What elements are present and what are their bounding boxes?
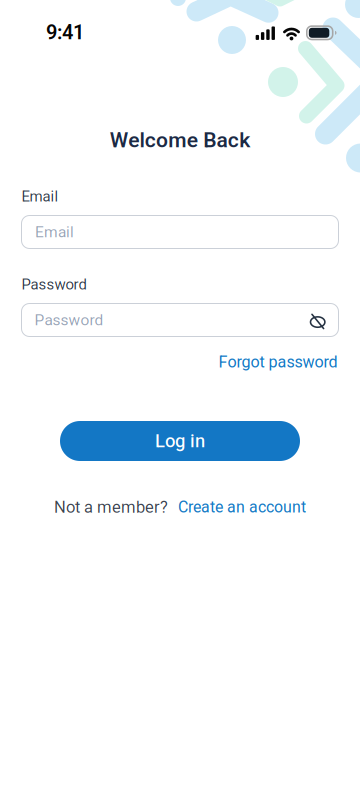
staticText: Password: [34, 311, 103, 329]
button[interactable]: Show password: [304, 308, 332, 335]
staticText: 9:41: [46, 21, 84, 44]
staticText: Password: [21, 276, 86, 293]
staticText: Log in: [155, 430, 205, 452]
button[interactable]: Create an account: [178, 498, 306, 516]
button[interactable]: Forgot password: [218, 352, 337, 371]
button[interactable]: Log in: [60, 421, 300, 461]
staticText: Not a member?: [54, 497, 168, 517]
staticText: Email: [21, 188, 58, 205]
staticText: Create an account: [178, 498, 306, 516]
staticText: Forgot password: [218, 352, 337, 371]
staticText: Welcome Back: [110, 128, 250, 152]
staticText: Email: [35, 223, 74, 241]
